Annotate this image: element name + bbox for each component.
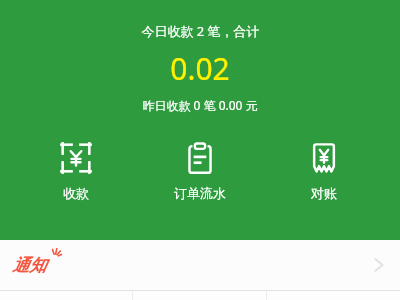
button[interactable]: 订单流水 <box>152 137 248 205</box>
staticText: 0.02 <box>170 48 230 89</box>
staticText: 收款 <box>63 185 89 201</box>
button[interactable]: 通知 <box>0 240 400 290</box>
button[interactable]: 对账 <box>276 137 372 205</box>
button[interactable]: 收款 <box>28 137 124 205</box>
staticText: 今日收款 2 笔，合计 <box>141 22 260 40</box>
staticText: 通知 <box>12 255 46 276</box>
staticText: 对账 <box>311 185 337 201</box>
staticText: 订单流水 <box>174 185 226 201</box>
staticText: 昨日收款 0 笔 0.00 元 <box>142 97 258 113</box>
